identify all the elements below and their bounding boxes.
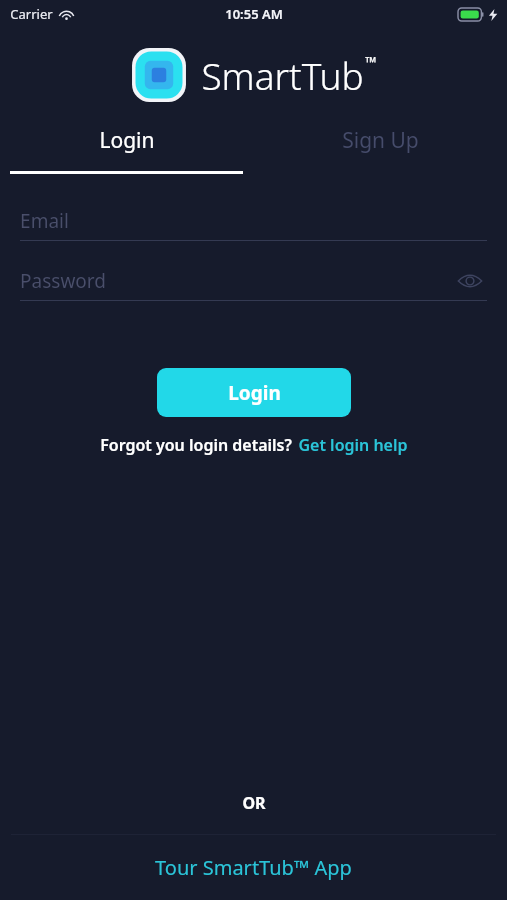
button[interactable]: Get login help [298, 434, 408, 456]
staticText: Login [228, 380, 281, 406]
button[interactable]: Tour SmartTub™ App [0, 854, 507, 881]
staticText: SmartTub [201, 50, 364, 100]
staticText: Tour SmartTub™ App [155, 854, 352, 881]
button[interactable]: Login [0, 126, 253, 174]
staticText: Forgot you login details? [100, 434, 292, 456]
staticText: Get login help [298, 434, 408, 456]
staticText: Carrier [10, 5, 53, 23]
staticText: 10:55 AM [225, 5, 283, 23]
button[interactable]: Show password [453, 264, 487, 298]
staticText: Login [99, 126, 155, 155]
button[interactable]: Login [157, 368, 351, 417]
staticText: Password [20, 268, 106, 294]
button[interactable]: Password [20, 262, 487, 301]
staticText: OR [242, 792, 266, 814]
button[interactable]: Email [20, 202, 487, 241]
staticText: ™ [365, 52, 377, 72]
staticText: Email [20, 208, 69, 234]
button[interactable]: Sign Up [253, 126, 507, 174]
staticText: Sign Up [342, 126, 419, 155]
